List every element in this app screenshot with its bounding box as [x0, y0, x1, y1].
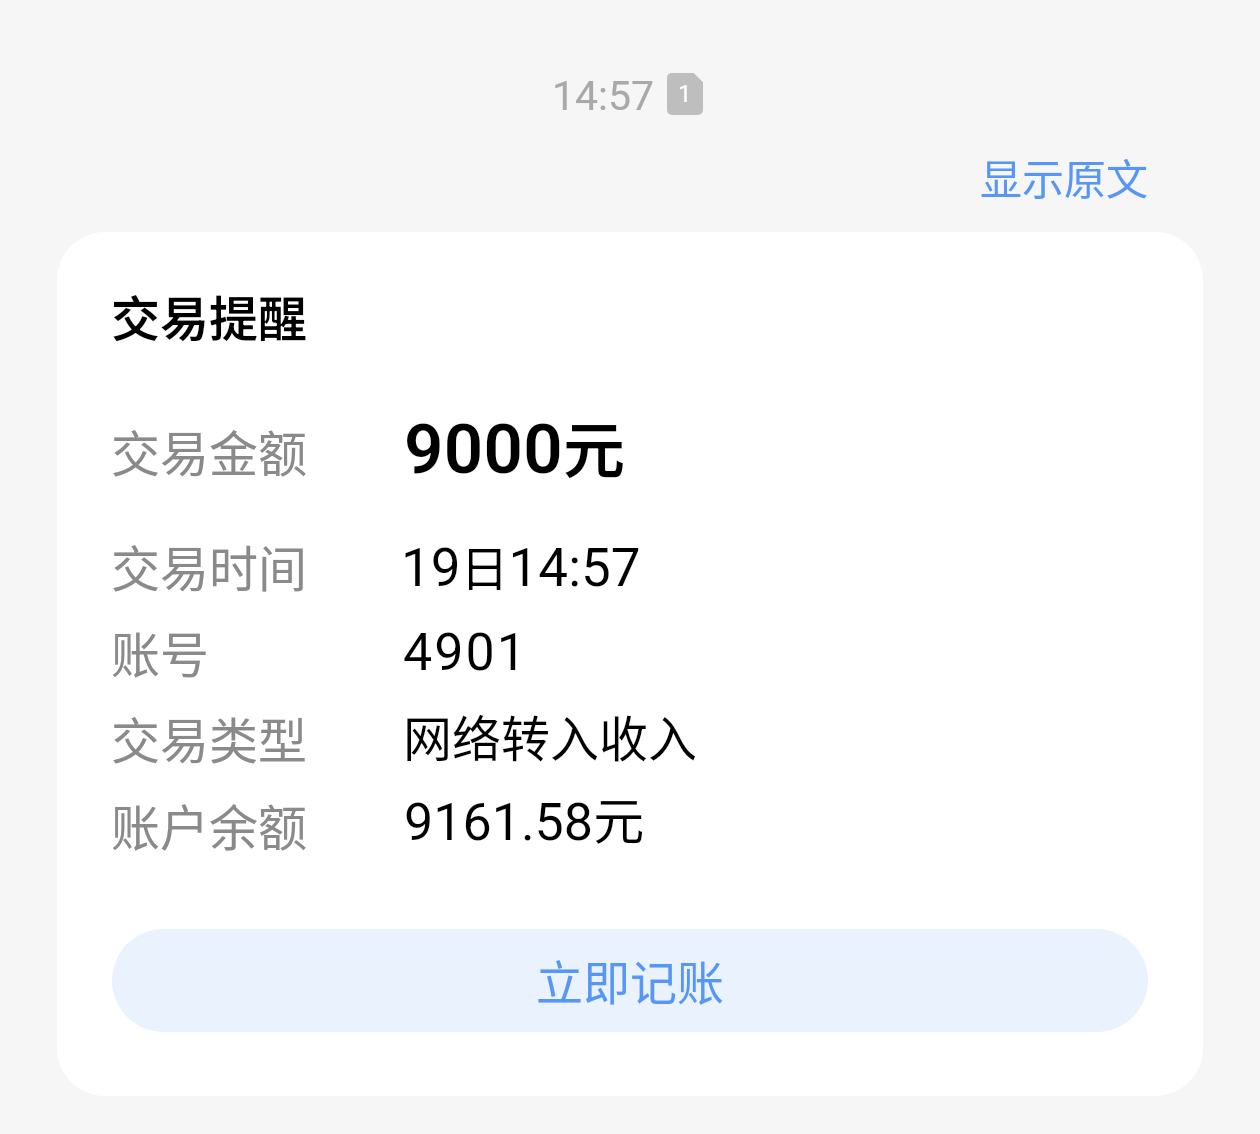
staticText: 显示原文 — [980, 146, 1149, 207]
other: SIM card 1 — [667, 73, 703, 115]
button[interactable]: 立即记账 — [112, 929, 1148, 1032]
staticText: 交易时间 — [111, 530, 308, 601]
staticText: 1 — [678, 80, 692, 108]
staticText: 19日14:57 — [401, 530, 641, 600]
button[interactable]: 显示原文 — [931, 138, 1149, 214]
staticText: 账户余额 — [111, 789, 308, 860]
staticText: 9000元 — [404, 401, 625, 491]
staticText: 网络转入收入 — [403, 700, 698, 771]
staticText: 交易类型 — [111, 702, 308, 773]
staticText: 交易提醒 — [111, 280, 308, 351]
staticText: 14:57 — [552, 72, 655, 120]
staticText: 账号 — [111, 616, 210, 687]
staticText: 交易金额 — [111, 415, 308, 486]
staticText: 4901 — [403, 622, 528, 683]
staticText: 9161.58元 — [404, 781, 645, 855]
staticText: 立即记账 — [536, 945, 724, 1013]
